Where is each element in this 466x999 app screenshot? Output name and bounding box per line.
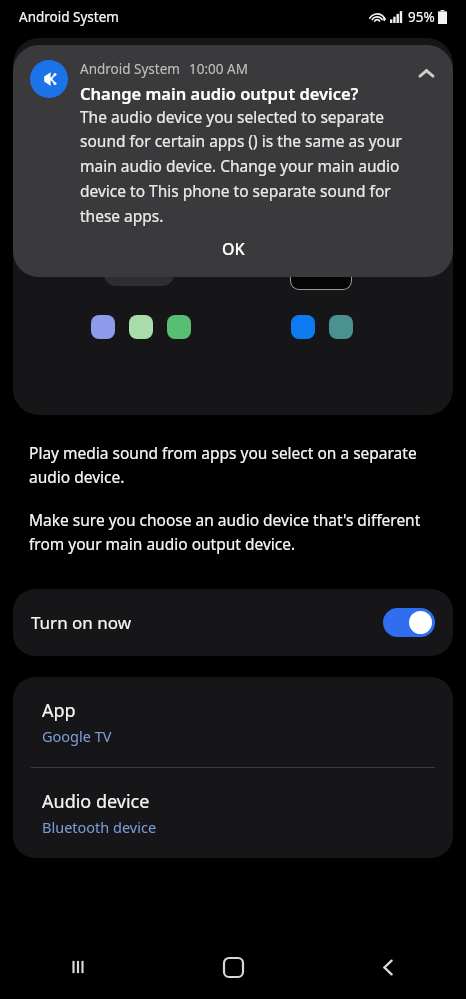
staticText: Make sure you choose an audio device tha… [29,509,437,554]
staticText: Google TV [42,726,112,746]
staticText: Android System [80,60,180,78]
button[interactable] [129,315,153,339]
staticText: 95% [408,8,435,26]
button[interactable]: Turn on now toggle [383,608,435,637]
button[interactable]: Recent apps [0,935,156,999]
staticText: OK [222,238,245,260]
staticText: 10:00 AM [189,60,248,78]
staticText: Android System [19,8,119,26]
button[interactable]: Collapse notification [413,60,439,86]
staticText: Bluetooth device [42,817,157,837]
staticText: Audio device [42,789,150,814]
button[interactable]: Turn on now [13,589,453,656]
button[interactable] [91,315,115,339]
button[interactable] [329,315,353,339]
button[interactable]: Audio device [13,768,453,858]
button[interactable]: Home [156,935,311,999]
button[interactable]: Back [311,935,466,999]
button[interactable] [167,315,191,339]
staticText: Change main audio output device? [80,82,359,104]
button[interactable]: App [13,677,453,767]
button[interactable]: OK [178,229,288,269]
staticText: Play media sound from apps you select on… [29,442,437,487]
staticText: Turn on now [31,611,132,634]
staticText: App [42,698,76,723]
staticText: The audio device you selected to separat… [80,106,413,227]
button[interactable] [291,315,315,339]
